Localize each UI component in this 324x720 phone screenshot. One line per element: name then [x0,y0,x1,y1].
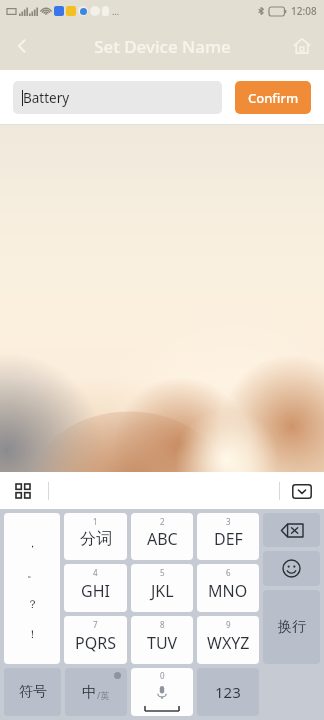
staticText: ， [27,536,38,550]
button[interactable]: Space [131,668,193,716]
staticText: MNO [208,580,248,602]
staticText: 2 [160,516,165,527]
staticText: PQRS [75,632,116,654]
staticText: ABC [147,528,178,550]
staticText: 12:08 [291,4,317,18]
staticText: 9 [226,619,231,630]
button[interactable]: Symbols [4,668,61,716]
staticText: 换行 [278,618,306,636]
staticText: 。 [27,566,38,580]
button[interactable]: Hide keyboard [286,475,318,507]
button[interactable]: Switch language [65,668,127,716]
staticText: 1 [93,516,98,527]
button[interactable]: ABC [131,513,193,560]
button[interactable]: TUV [131,616,193,664]
button[interactable]: PQRS [64,616,127,664]
staticText: GHI [81,580,110,602]
button[interactable]: Confirm [235,81,311,114]
button[interactable]: JKL [131,564,193,612]
staticText: DEF [214,528,243,550]
staticText: JKL [151,580,174,602]
staticText: 123 [215,682,241,702]
button[interactable]: Keyboard options [8,476,38,506]
staticText: ！ [27,627,38,641]
button[interactable]: Home [280,24,324,68]
staticText: 分词 [80,529,112,549]
button[interactable]: Punctuation [4,513,60,664]
button[interactable]: GHI [64,564,127,612]
button[interactable]: WXYZ [197,616,259,664]
staticText: … [112,5,120,17]
button[interactable]: 分词 [64,513,127,560]
staticText: 3 [226,516,231,527]
staticText: /英 [97,689,110,701]
staticText: WXYZ [207,632,250,654]
staticText: 中 [82,683,97,702]
staticText: TUV [147,632,178,654]
button[interactable]: Enter [263,590,320,664]
staticText: 符号 [19,683,47,701]
staticText: 5 [160,567,165,578]
button[interactable]: Backspace [263,513,320,547]
staticText: ？ [27,597,38,611]
button[interactable]: MNO [197,564,259,612]
staticText: 8 [160,619,165,630]
staticText: Battery [23,89,70,107]
button[interactable]: Numbers [197,668,259,716]
button[interactable]: Battery [13,81,222,114]
staticText: Confirm [248,89,299,107]
staticText: 0 [160,670,165,681]
button[interactable]: Back [0,24,44,68]
staticText: 6 [226,567,231,578]
staticText: 7 [93,619,98,630]
staticText: Set Device Name [94,35,231,58]
button[interactable]: Emoji [263,551,320,586]
button[interactable]: DEF [197,513,259,560]
staticText: 4 [93,567,98,578]
